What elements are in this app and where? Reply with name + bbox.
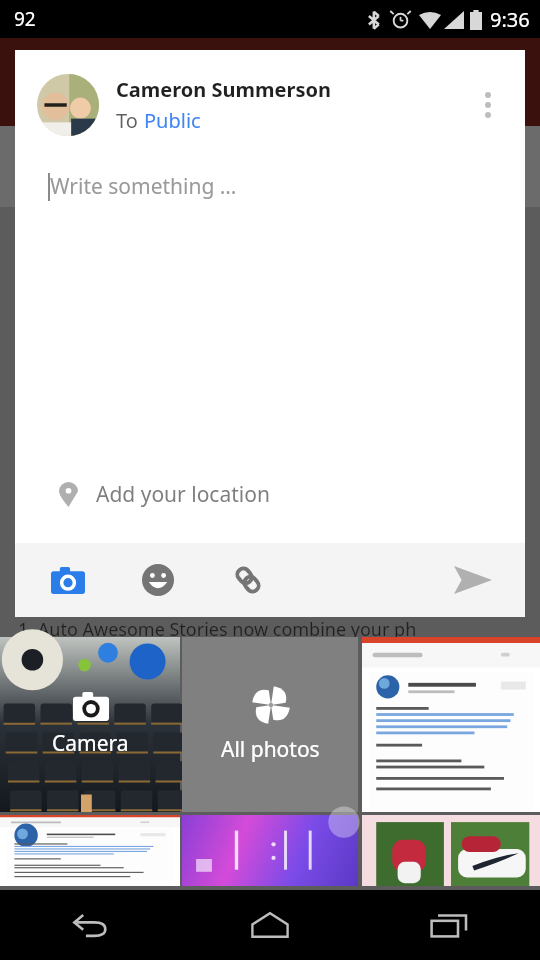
button[interactable]: Shoes photo bbox=[362, 815, 540, 886]
button[interactable]: More options bbox=[463, 80, 513, 130]
button[interactable]: Screenshot photo bbox=[0, 815, 180, 886]
button[interactable]: Camera bbox=[0, 637, 180, 812]
button[interactable]: Add your location bbox=[15, 463, 525, 525]
button[interactable]: Cameron Summerson bbox=[15, 50, 525, 160]
button[interactable]: All photos bbox=[182, 637, 358, 812]
staticText: To bbox=[116, 107, 144, 134]
staticText: Public bbox=[144, 107, 201, 134]
staticText: 9:36 bbox=[490, 6, 530, 33]
button[interactable]: Add photo bbox=[43, 555, 93, 605]
staticText: Camera bbox=[52, 729, 129, 758]
button[interactable]: Lock screen photo bbox=[182, 815, 358, 886]
button[interactable]: Recent apps bbox=[360, 890, 540, 960]
staticText: 92 bbox=[14, 6, 36, 32]
staticText: All photos bbox=[221, 735, 320, 764]
button[interactable]: Back bbox=[0, 890, 180, 960]
staticText: Cameron Summerson bbox=[116, 76, 331, 103]
staticText: Add your location bbox=[96, 480, 270, 509]
staticText: Write something … bbox=[50, 172, 237, 201]
button[interactable]: Screenshot photo bbox=[362, 637, 540, 812]
button[interactable]: Add link bbox=[223, 555, 273, 605]
button[interactable]: Add emoji bbox=[133, 555, 183, 605]
staticText: 1. Auto Awesome Stories now combine your… bbox=[18, 617, 417, 642]
button[interactable]: Home bbox=[180, 890, 360, 960]
button[interactable]: Send bbox=[445, 552, 501, 608]
